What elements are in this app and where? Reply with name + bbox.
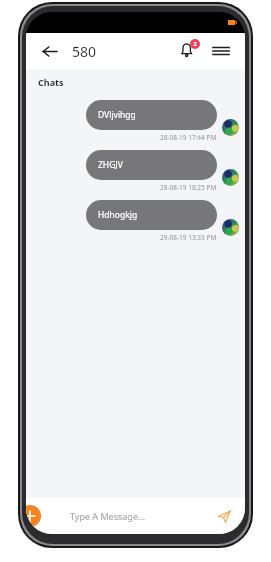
staticText: Chats — [38, 76, 64, 88]
staticText: 580 — [72, 42, 97, 61]
staticText: Type A Message... — [70, 510, 146, 522]
button[interactable]: DVljvihgg — [38, 100, 239, 142]
button[interactable]: Add attachment — [26, 505, 41, 527]
staticText: ZHGJV — [98, 159, 123, 171]
staticText: DVljvihgg — [98, 109, 136, 121]
button[interactable]: Type A Message... — [70, 510, 213, 522]
button[interactable]: Hdhogkjg — [38, 200, 239, 242]
staticText: 28-08-19 18:25 PM — [160, 183, 217, 192]
button[interactable]: Back — [38, 40, 60, 62]
button[interactable]: ZHGJV — [38, 150, 239, 192]
staticText: 29-08-19 13:33 PM — [160, 233, 217, 242]
staticText: Hdhogkjg — [98, 209, 138, 221]
button[interactable]: Send — [213, 505, 235, 527]
button[interactable]: Menu — [209, 39, 233, 63]
staticText: 28-08-19 17:44 PM — [160, 133, 217, 142]
staticText: 2 — [193, 40, 197, 48]
button[interactable]: Notifications — [175, 38, 201, 64]
